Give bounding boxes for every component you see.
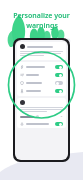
staticText: warnings [26,21,58,31]
button[interactable]: Toggle off [55,81,63,85]
button[interactable]: Toggle on [55,89,63,93]
other: flash [20,65,24,69]
other: thermo [20,89,24,93]
other: wind [20,73,24,77]
other: shield [20,81,24,85]
button[interactable]: shield [17,79,66,87]
button[interactable]: wind [17,71,66,79]
button[interactable]: flash [17,63,66,71]
staticText: Personalize your [13,11,70,21]
other: bell [20,122,24,126]
button[interactable]: Toggle on [55,73,63,77]
button[interactable]: thermo [17,87,66,95]
button[interactable]: bell [20,122,63,126]
button[interactable]: Toggle on [55,122,63,126]
button[interactable]: Toggle on [55,65,63,69]
